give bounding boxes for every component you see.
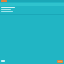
button[interactable]: Action (57, 60, 63, 63)
button[interactable]: More (1, 60, 5, 62)
button[interactable]: Title (1, 0, 7, 2)
